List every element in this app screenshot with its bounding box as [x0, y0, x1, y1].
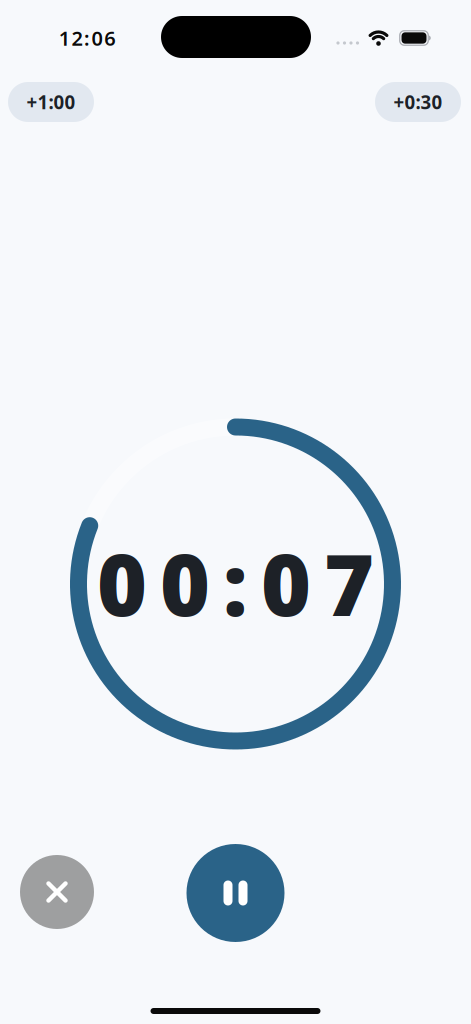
staticText: 12:06	[59, 25, 115, 51]
staticText: +1:00	[26, 90, 75, 114]
staticText: 00:07	[97, 526, 374, 640]
staticText: +0:30	[393, 90, 442, 114]
button[interactable]: +1:00	[8, 82, 94, 122]
button[interactable]: Cancel	[20, 855, 94, 929]
button[interactable]: +0:30	[375, 82, 461, 122]
button[interactable]: Pause	[186, 844, 284, 942]
